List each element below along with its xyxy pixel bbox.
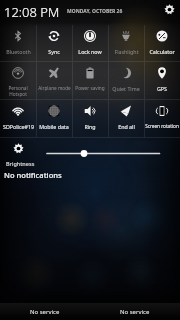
button[interactable]: End all xyxy=(108,100,144,137)
staticText: No service xyxy=(30,308,60,316)
button[interactable]: Flashlight xyxy=(108,25,144,61)
staticText: Airplane mode xyxy=(38,85,71,91)
staticText: No notifications xyxy=(4,170,62,180)
button[interactable]: Screen rotation xyxy=(144,100,180,137)
staticText: End all xyxy=(118,123,135,130)
staticText: Screen rotation xyxy=(145,123,179,129)
staticText: Power saving xyxy=(75,85,105,91)
staticText: Lock now xyxy=(78,48,102,55)
staticText: No service xyxy=(120,308,150,316)
button[interactable]: SDPolice#19 xyxy=(0,100,36,137)
staticText: Quiet Time xyxy=(112,85,140,92)
staticText: Flashlight xyxy=(114,48,139,55)
staticText: 12:08 PM xyxy=(4,3,60,21)
button[interactable]: Ring xyxy=(72,100,108,137)
button[interactable]: Brightness xyxy=(0,138,180,170)
staticText: Bluetooth xyxy=(6,48,31,55)
button[interactable]: Sync xyxy=(36,25,72,61)
staticText: Mobile data xyxy=(39,123,69,130)
staticText: Calculator xyxy=(149,48,175,55)
staticText: SDPolice#19 xyxy=(3,123,34,130)
button[interactable]: Quiet Time xyxy=(108,62,144,99)
button[interactable]: Calculator xyxy=(144,25,180,61)
button[interactable]: Lock now xyxy=(72,25,108,61)
button[interactable]: Airplane mode xyxy=(36,62,72,99)
button[interactable]: Personal Hotspot xyxy=(0,62,36,99)
button[interactable]: Mobile data xyxy=(36,100,72,137)
staticText: Personal Hotspot xyxy=(8,85,28,97)
staticText: GPS xyxy=(157,85,167,92)
staticText: Ring xyxy=(84,123,96,130)
staticText: Brightness xyxy=(6,160,35,167)
staticText: Sync xyxy=(48,48,60,55)
button[interactable]: Settings xyxy=(162,2,176,16)
button[interactable]: Bluetooth xyxy=(0,25,36,61)
button[interactable]: GPS xyxy=(144,62,180,99)
button[interactable]: Power saving xyxy=(72,62,108,99)
staticText: MONDAY, OCTOBER 26 xyxy=(67,8,123,15)
